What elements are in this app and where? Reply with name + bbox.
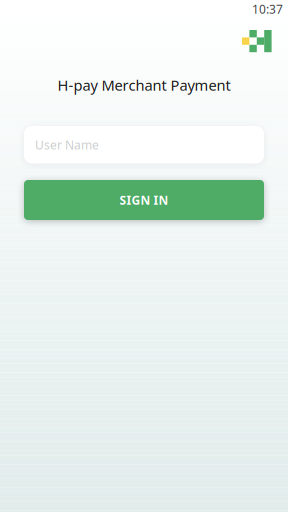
button[interactable]: User Name — [24, 126, 264, 163]
staticText: H-pay Merchant Payment — [57, 75, 230, 95]
staticText: SIGN IN — [119, 192, 168, 208]
button[interactable]: SIGN IN — [24, 180, 264, 220]
staticText: User Name — [35, 137, 99, 153]
staticText: 10:37 — [252, 1, 283, 17]
